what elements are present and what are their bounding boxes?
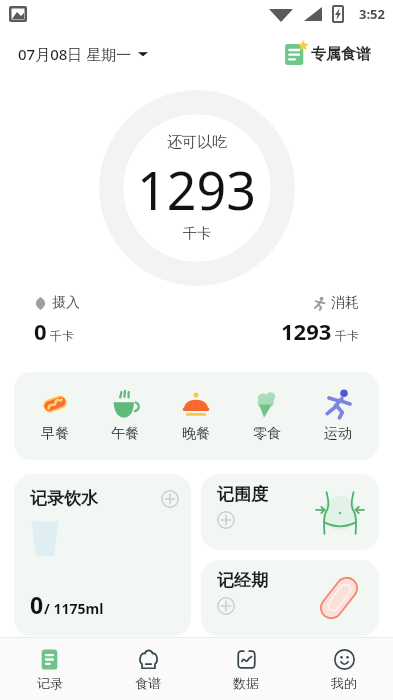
button[interactable]: 记围度 (201, 474, 379, 550)
button[interactable]: 早餐 (20, 383, 90, 449)
staticText: 记录 (37, 675, 63, 691)
button[interactable]: 记录饮水 (14, 474, 191, 636)
staticText: 晚餐 (182, 425, 210, 443)
staticText: 千卡 (183, 225, 211, 243)
staticText: 我的 (331, 675, 357, 691)
staticText: 记围度 (217, 484, 268, 505)
button[interactable]: 运动 (302, 383, 373, 449)
staticText: 午餐 (111, 425, 139, 443)
staticText: 食谱 (135, 675, 161, 691)
staticText: 千卡 (335, 328, 359, 343)
staticText: 1293 (281, 316, 332, 346)
button[interactable]: 我的 (295, 638, 393, 700)
button[interactable]: 晚餐 (160, 383, 231, 449)
staticText: 零食 (253, 425, 281, 443)
button[interactable]: 记录 (0, 638, 99, 700)
staticText: 0 (34, 316, 47, 346)
staticText: 0 (30, 589, 44, 620)
staticText: 运动 (324, 425, 352, 443)
staticText: 1293 (137, 154, 256, 225)
staticText: 记录饮水 (30, 488, 98, 509)
staticText: / 1175ml (44, 599, 104, 618)
button[interactable]: 数据 (197, 638, 295, 700)
staticText: 摄入 (52, 294, 80, 312)
staticText: 记经期 (217, 570, 268, 591)
staticText: 数据 (233, 675, 259, 691)
staticText: 07月08日 星期一 (18, 44, 132, 64)
staticText: 千卡 (50, 328, 74, 343)
staticText: 3:52 (359, 5, 385, 23)
button[interactable]: 零食 (231, 383, 302, 449)
staticText: 早餐 (41, 425, 69, 443)
button[interactable]: 记经期 (201, 560, 379, 636)
button[interactable]: 07月08日 星期一 (18, 40, 148, 68)
button[interactable]: 午餐 (90, 383, 160, 449)
button[interactable]: 食谱 (99, 638, 197, 700)
staticText: 还可以吃 (167, 133, 227, 152)
staticText: 专属食谱 (311, 45, 371, 64)
button[interactable]: 专属食谱 (279, 37, 375, 71)
staticText: 消耗 (331, 294, 359, 312)
